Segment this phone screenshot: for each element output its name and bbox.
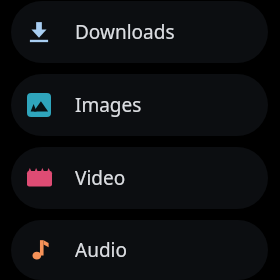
button[interactable]: Downloads — [11, 1, 268, 63]
staticText: Video — [75, 165, 126, 191]
other: Video — [27, 166, 52, 191]
staticText: Downloads — [75, 19, 175, 45]
other: Audio — [27, 238, 51, 262]
staticText: Audio — [75, 237, 127, 263]
staticText: Images — [75, 92, 142, 118]
button[interactable]: Video — [11, 147, 268, 209]
button[interactable]: Audio — [11, 220, 268, 280]
button[interactable]: Images — [11, 74, 268, 136]
other: Downloads — [26, 19, 52, 45]
other: Images — [27, 93, 51, 117]
